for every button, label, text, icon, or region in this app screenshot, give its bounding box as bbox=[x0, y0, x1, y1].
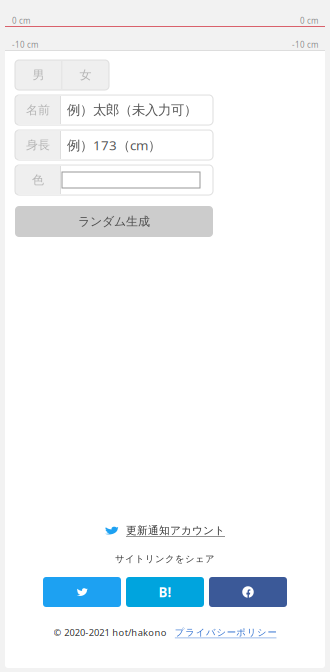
staticText: © 2020-2021 hot/hakono bbox=[54, 626, 167, 639]
button[interactable]: Share on Facebook bbox=[209, 577, 287, 607]
staticText: -10 cm bbox=[292, 39, 318, 50]
staticText: 例）173（cm） bbox=[67, 136, 161, 154]
staticText: B! bbox=[158, 583, 171, 601]
button[interactable]: プライバシーポリシー bbox=[175, 627, 276, 638]
staticText: 色 bbox=[32, 173, 44, 187]
button[interactable]: 女 bbox=[62, 61, 108, 89]
staticText: 例）太郎（未入力可） bbox=[67, 102, 197, 118]
button[interactable]: 男 bbox=[15, 61, 61, 89]
staticText: プライバシーポリシー bbox=[175, 627, 276, 638]
staticText: 0 cm bbox=[12, 15, 30, 26]
staticText: 更新通知アカウント bbox=[126, 524, 225, 537]
staticText: 0 cm bbox=[300, 15, 318, 26]
staticText: 身長 bbox=[26, 138, 50, 152]
staticText: ランダム生成 bbox=[78, 214, 150, 229]
button[interactable]: 色を選択 bbox=[61, 166, 213, 194]
staticText: -10 cm bbox=[12, 39, 38, 50]
staticText: 名前 bbox=[26, 103, 50, 117]
button[interactable]: 更新通知アカウント bbox=[105, 524, 225, 537]
button[interactable]: Share on Twitter bbox=[43, 577, 121, 607]
staticText: 女 bbox=[79, 68, 91, 82]
staticText: 男 bbox=[32, 68, 44, 82]
staticText: サイトリンクをシェア bbox=[115, 553, 215, 565]
button[interactable]: ランダム生成 bbox=[15, 206, 213, 237]
button[interactable]: Share on Hatena Bookmark bbox=[126, 577, 204, 607]
